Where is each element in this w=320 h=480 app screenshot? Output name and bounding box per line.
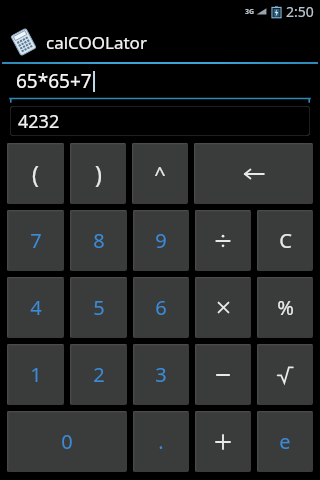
staticText: 4232: [18, 109, 60, 134]
button[interactable]: 1: [7, 344, 64, 405]
button[interactable]: 9: [133, 210, 189, 271]
staticText: 2: [93, 361, 105, 388]
button[interactable]: ^: [132, 143, 188, 204]
button[interactable]: 2: [70, 344, 127, 405]
button[interactable]: ): [70, 143, 126, 204]
staticText: .: [158, 428, 164, 455]
staticText: 2:50: [286, 2, 314, 21]
button[interactable]: [195, 277, 251, 338]
button[interactable]: [195, 344, 251, 405]
button[interactable]: 0: [7, 411, 127, 472]
staticText: 4: [30, 294, 42, 321]
staticText: 1: [30, 361, 42, 388]
button[interactable]: 6: [133, 277, 189, 338]
button[interactable]: C: [257, 210, 313, 271]
staticText: 0: [61, 428, 73, 455]
staticText: calCOOLator: [46, 31, 147, 54]
staticText: %: [277, 294, 294, 321]
button[interactable]: %: [257, 277, 313, 338]
button[interactable]: [195, 411, 251, 472]
staticText: 8: [93, 227, 105, 254]
staticText: C: [279, 227, 292, 254]
button[interactable]: 7: [7, 210, 64, 271]
button[interactable]: .: [133, 411, 189, 472]
button[interactable]: [257, 344, 313, 405]
staticText: 3: [155, 361, 167, 388]
button[interactable]: 4232: [10, 106, 310, 136]
button[interactable]: 4: [7, 277, 64, 338]
button[interactable]: (: [7, 143, 64, 204]
staticText: 65*65+7: [16, 68, 92, 94]
staticText: 5: [93, 294, 105, 321]
staticText: ^: [154, 160, 166, 187]
button[interactable]: 5: [70, 277, 127, 338]
staticText: ): [95, 158, 102, 189]
staticText: e: [279, 428, 291, 455]
staticText: 6: [155, 294, 167, 321]
button[interactable]: 65*65+7: [10, 64, 310, 97]
button[interactable]: Backspace: [194, 143, 313, 204]
button[interactable]: e: [257, 411, 313, 472]
staticText: 3G: [245, 7, 255, 17]
staticText: 7: [30, 227, 42, 254]
button[interactable]: [195, 210, 251, 271]
button[interactable]: 3: [133, 344, 189, 405]
button[interactable]: 8: [70, 210, 127, 271]
staticText: 9: [155, 227, 167, 254]
staticText: (: [32, 158, 39, 189]
